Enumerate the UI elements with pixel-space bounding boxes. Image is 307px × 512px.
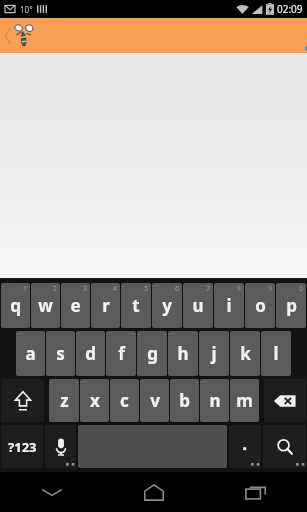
staticText: 8 [237,284,242,294]
staticText: a [25,342,36,365]
staticText: u [192,294,204,317]
staticText: 6 [175,284,180,294]
staticText: w [38,294,53,317]
button[interactable]: ?123 [1,425,43,468]
staticText: 9 [268,284,273,294]
button[interactable]: d [76,331,105,376]
button[interactable]: i [214,283,244,328]
button[interactable]: a [16,331,45,376]
staticText: j [211,342,217,365]
button[interactable]: s [46,331,75,376]
button[interactable]: p [276,283,306,328]
staticText: s [56,342,65,365]
button[interactable]: Navigate up [0,18,307,53]
staticText: 0 [299,284,304,294]
button[interactable]: v [140,379,169,422]
button[interactable]: Home [103,472,205,512]
staticText: r [102,294,110,317]
button[interactable]: c [110,379,139,422]
staticText: i [226,294,232,317]
staticText: l [273,342,279,365]
staticText: 3 [83,284,88,294]
button[interactable]: Hide keyboard [0,472,103,512]
button[interactable]: j [199,331,229,376]
staticText: 10° [20,4,33,15]
button[interactable]: h [168,331,198,376]
staticText: t [132,294,140,317]
button[interactable]: y [152,283,182,328]
button[interactable]: n [200,379,229,422]
staticText: b [179,389,190,412]
staticText: 02:09 [277,2,303,16]
button[interactable]: Period [229,425,261,468]
staticText: 4 [113,284,118,294]
staticText: z [60,389,69,412]
button[interactable]: x [80,379,109,422]
button[interactable]: k [230,331,260,376]
staticText: 5 [144,284,149,294]
staticText: h [177,342,189,365]
button[interactable]: Shift [1,379,44,422]
button[interactable]: Backspace [264,379,306,422]
button[interactable]: g [137,331,167,376]
staticText: y [162,294,172,317]
button[interactable]: w [31,283,60,328]
staticText: 2 [53,284,58,294]
staticText: m [236,389,253,412]
button[interactable]: z [49,379,79,422]
button[interactable]: u [183,283,213,328]
staticText: p [286,294,297,317]
staticText: 7 [206,284,211,294]
staticText: 1 [23,284,28,294]
button[interactable]: t [121,283,151,328]
staticText: e [70,294,81,317]
staticText: c [120,389,129,412]
staticText: v [150,389,160,412]
button[interactable]: m [230,379,259,422]
staticText: d [85,342,96,365]
staticText: n [209,389,221,412]
staticText: q [10,294,21,317]
button[interactable]: q [1,283,30,328]
staticText: g [147,342,158,365]
staticText: f [118,342,125,365]
button[interactable]: Recent apps [205,472,307,512]
button[interactable]: l [261,331,291,376]
staticText: k [240,342,251,365]
staticText: ?123 [8,438,37,456]
button[interactable]: o [245,283,275,328]
button[interactable]: r [91,283,120,328]
staticText: x [90,389,100,412]
button[interactable]: Search [263,425,306,468]
button[interactable]: b [170,379,199,422]
button[interactable]: f [106,331,136,376]
button[interactable]: Voice input [45,425,76,468]
button[interactable]: e [61,283,90,328]
staticText: o [255,294,266,317]
